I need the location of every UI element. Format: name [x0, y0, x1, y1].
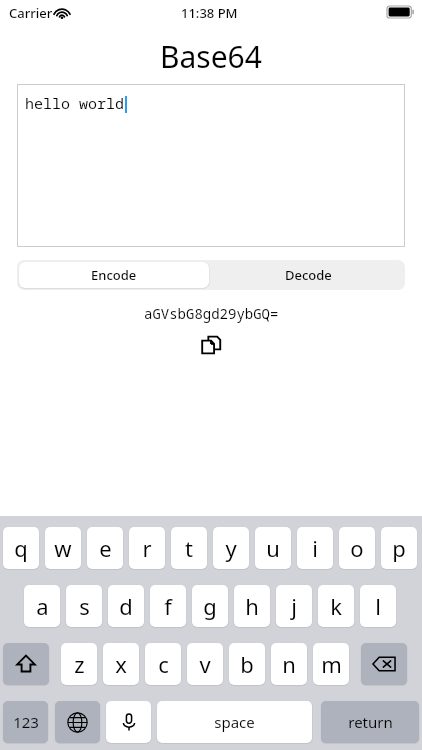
staticText: f [164, 591, 172, 621]
staticText: t [185, 533, 193, 563]
button[interactable]: Next keyboard [55, 701, 100, 743]
staticText: p [392, 533, 406, 563]
button[interactable]: k [318, 585, 354, 627]
button[interactable]: e [87, 527, 123, 569]
staticText: q [14, 533, 28, 563]
button[interactable]: d [108, 585, 144, 627]
staticText: return [348, 712, 393, 732]
staticText: Base64 [160, 36, 262, 76]
staticText: r [142, 533, 152, 563]
staticText: hello world [25, 93, 125, 113]
staticText: b [240, 649, 254, 679]
staticText: n [282, 649, 296, 679]
button[interactable]: 123 [3, 701, 48, 743]
staticText: Decode [285, 266, 332, 284]
button[interactable]: t [171, 527, 207, 569]
staticText: o [350, 533, 364, 563]
button[interactable]: Shift [3, 643, 49, 685]
button[interactable]: p [381, 527, 417, 569]
button[interactable]: Decode [211, 260, 405, 290]
staticText: k [330, 591, 342, 621]
staticText: 11:38 PM [181, 4, 238, 22]
staticText: aGVsbG8gd29ybGQ= [144, 304, 279, 323]
button[interactable]: Backspace [361, 643, 407, 685]
staticText: l [375, 591, 381, 621]
staticText: m [321, 649, 342, 679]
button[interactable]: x [103, 643, 139, 685]
staticText: space [214, 712, 255, 732]
staticText: x [115, 649, 127, 679]
staticText: s [79, 591, 90, 621]
button[interactable]: h [234, 585, 270, 627]
button[interactable]: j [276, 585, 312, 627]
staticText: d [119, 591, 133, 621]
button[interactable]: z [61, 643, 97, 685]
staticText: 123 [13, 712, 39, 732]
button[interactable]: y [213, 527, 249, 569]
staticText: c [158, 649, 169, 679]
staticText: z [74, 649, 85, 679]
button[interactable]: o [339, 527, 375, 569]
button[interactable]: s [66, 585, 102, 627]
button[interactable]: space [157, 701, 312, 743]
button[interactable]: b [229, 643, 265, 685]
button[interactable]: v [187, 643, 223, 685]
staticText: e [99, 533, 112, 563]
button[interactable]: q [3, 527, 39, 569]
staticText: w [54, 533, 72, 563]
staticText: a [36, 591, 49, 621]
button[interactable]: Encode [19, 262, 209, 288]
staticText: g [203, 591, 217, 621]
staticText: h [245, 591, 259, 621]
button[interactable]: g [192, 585, 228, 627]
button[interactable]: i [297, 527, 333, 569]
button[interactable]: a [24, 585, 60, 627]
button[interactable]: w [45, 527, 81, 569]
button[interactable]: return [321, 701, 419, 743]
staticText: Carrier [9, 4, 53, 22]
button[interactable]: f [150, 585, 186, 627]
button[interactable]: c [145, 643, 181, 685]
button[interactable]: n [271, 643, 307, 685]
button[interactable]: r [129, 527, 165, 569]
button[interactable]: Copy [196, 330, 226, 360]
staticText: y [225, 533, 237, 563]
button[interactable]: m [313, 643, 349, 685]
staticText: u [266, 533, 280, 563]
staticText: Encode [91, 266, 137, 284]
staticText: i [312, 533, 318, 563]
button[interactable]: l [360, 585, 396, 627]
button[interactable]: u [255, 527, 291, 569]
staticText: v [199, 649, 211, 679]
button[interactable]: Dictate [106, 701, 151, 743]
staticText: j [291, 591, 297, 621]
button[interactable]: hello world [17, 84, 405, 247]
